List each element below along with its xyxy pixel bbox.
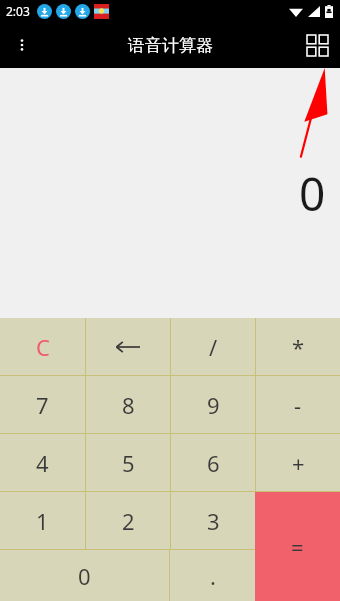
button[interactable]: 4 (0, 434, 85, 491)
button[interactable]: / (171, 318, 255, 375)
staticText: / (209, 332, 218, 362)
staticText: 2 (122, 506, 135, 536)
button[interactable]: 0 (0, 550, 169, 601)
button[interactable]: 1 (0, 492, 85, 549)
button[interactable]: 8 (86, 376, 170, 433)
button[interactable]: . (170, 550, 255, 601)
staticText: - (294, 390, 302, 420)
staticText: 2:03 (6, 3, 30, 19)
button[interactable]: + (256, 434, 340, 491)
button[interactable]: 3 (171, 492, 255, 549)
button[interactable]: C (0, 318, 85, 375)
staticText: 0 (78, 561, 91, 591)
staticText: C (36, 332, 50, 362)
button[interactable]: 5 (86, 434, 170, 491)
button[interactable]: * (256, 318, 340, 375)
staticText: + (292, 448, 305, 478)
button[interactable]: = (255, 492, 340, 601)
button[interactable]: 9 (171, 376, 255, 433)
button[interactable]: - (256, 376, 340, 433)
staticText: 9 (207, 390, 220, 420)
staticText: 5 (122, 448, 135, 478)
staticText: 1 (36, 506, 49, 536)
staticText: 0 (299, 162, 326, 225)
staticText: 8 (122, 390, 135, 420)
button[interactable]: More options (0, 23, 44, 67)
button[interactable]: 7 (0, 376, 85, 433)
button[interactable]: Backspace (86, 318, 170, 375)
button[interactable]: 6 (171, 434, 255, 491)
staticText: 4 (36, 448, 49, 478)
staticText: * (292, 332, 305, 362)
staticText: 3 (207, 506, 220, 536)
staticText: = (291, 532, 304, 562)
button[interactable]: 2 (86, 492, 170, 549)
staticText: 6 (207, 448, 220, 478)
staticText: 语音计算器 (128, 35, 213, 56)
staticText: . (210, 561, 216, 591)
button[interactable]: Grid menu (294, 22, 340, 68)
staticText: 7 (36, 390, 49, 420)
